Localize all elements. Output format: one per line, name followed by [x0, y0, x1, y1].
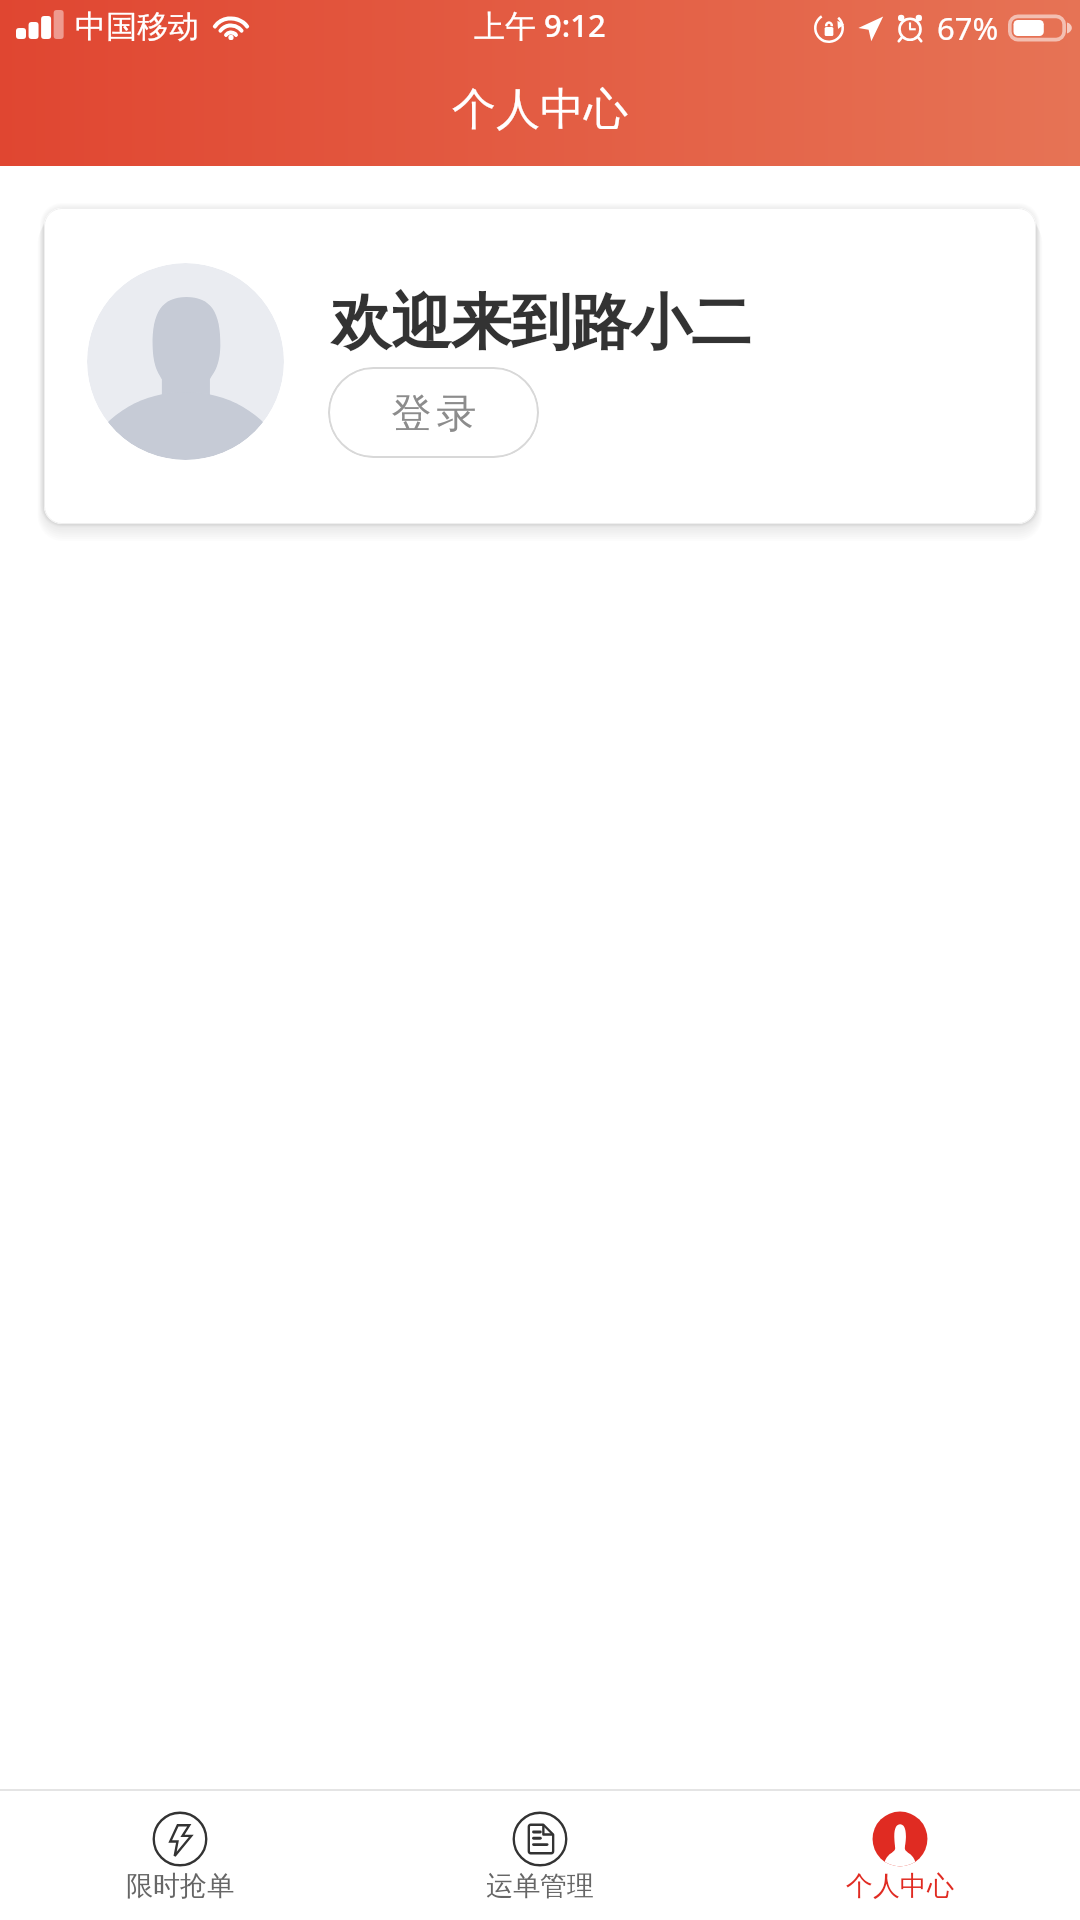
- staticText: 限时抢单: [126, 1869, 234, 1903]
- other: Battery 67 percent: [1008, 12, 1075, 44]
- other: Rotation lock on: [814, 13, 844, 43]
- other: Wi-Fi connected: [211, 11, 251, 41]
- button[interactable]: User avatar: [44, 208, 1036, 524]
- button[interactable]: 个人中心: [720, 1791, 1080, 1920]
- staticText: 登录: [389, 388, 479, 438]
- staticText: 中国移动: [75, 7, 199, 46]
- staticText: 个人中心: [452, 82, 628, 137]
- staticText: 67%: [937, 7, 999, 49]
- staticText: 上午 9:12: [474, 4, 606, 46]
- button[interactable]: 登录: [328, 367, 539, 458]
- other: Alarm set: [896, 14, 924, 42]
- button[interactable]: 限时抢单: [0, 1791, 360, 1920]
- other: Cellular signal strength: [16, 10, 63, 39]
- other: Location in use: [857, 15, 884, 42]
- staticText: 运单管理: [486, 1869, 594, 1903]
- staticText: 欢迎来到路小二: [331, 285, 751, 361]
- button[interactable]: User avatar: [87, 263, 284, 460]
- staticText: 个人中心: [846, 1869, 954, 1903]
- button[interactable]: 运单管理: [360, 1791, 720, 1920]
